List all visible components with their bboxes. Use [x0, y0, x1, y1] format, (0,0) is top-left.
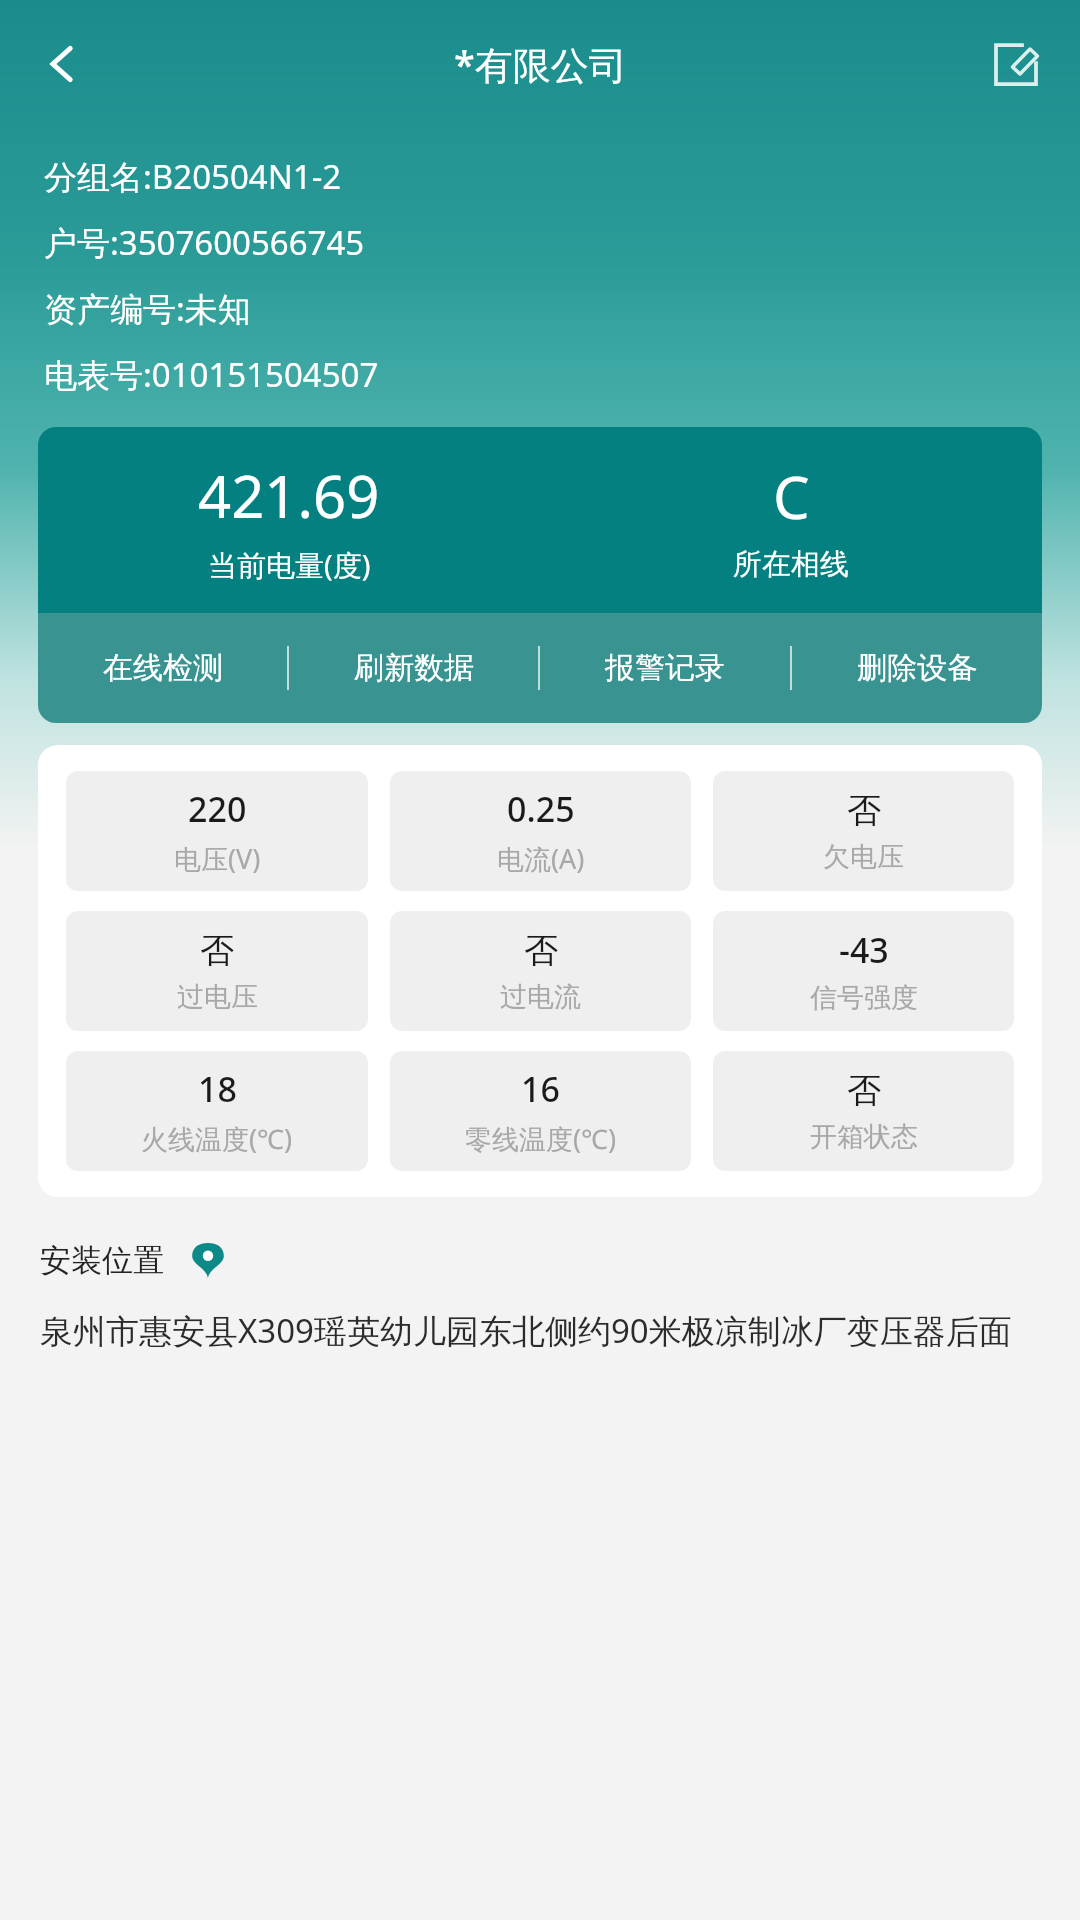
- staticText: 否: [847, 789, 881, 832]
- staticText: 泉州市惠安县X309瑶英幼儿园东北侧约90米极凉制冰厂变压器后面: [40, 1308, 1040, 1353]
- staticText: 电表号:010151504507: [44, 352, 379, 397]
- button[interactable]: 220: [66, 771, 368, 891]
- button[interactable]: 18: [66, 1051, 368, 1171]
- staticText: 过电压: [177, 980, 258, 1014]
- button[interactable]: 否: [713, 771, 1014, 891]
- staticText: 信号强度: [810, 981, 918, 1015]
- staticText: 所在相线: [733, 546, 849, 583]
- staticText: 电压(V): [174, 840, 261, 877]
- button[interactable]: 否: [713, 1051, 1014, 1171]
- staticText: 刷新数据: [354, 649, 474, 687]
- button[interactable]: 在线检测: [38, 613, 287, 723]
- staticText: 否: [847, 1069, 881, 1112]
- staticText: 220: [188, 786, 247, 832]
- button[interactable]: -43: [713, 911, 1014, 1031]
- button[interactable]: 安装位置: [40, 1241, 226, 1280]
- button[interactable]: 报警记录: [540, 613, 790, 723]
- staticText: 16: [521, 1066, 560, 1112]
- staticText: 电流(A): [497, 840, 585, 877]
- staticText: *有限公司: [454, 38, 627, 90]
- staticText: 当前电量(度): [208, 545, 371, 585]
- button[interactable]: 刷新数据: [289, 613, 538, 723]
- staticText: 否: [200, 929, 234, 972]
- staticText: 过电流: [500, 980, 581, 1014]
- staticText: 火线温度(℃): [141, 1120, 293, 1157]
- button[interactable]: 否: [66, 911, 368, 1031]
- staticText: 删除设备: [857, 649, 977, 687]
- staticText: C: [773, 457, 810, 536]
- staticText: 安装位置: [40, 1241, 164, 1280]
- staticText: 分组名:B20504N1-2: [44, 154, 342, 199]
- staticText: 421.69: [198, 456, 380, 535]
- staticText: 资产编号:未知: [44, 286, 251, 331]
- staticText: -43: [839, 927, 889, 973]
- staticText: 0.25: [507, 786, 575, 832]
- staticText: 零线温度(℃): [465, 1120, 617, 1157]
- button[interactable]: 0.25: [390, 771, 691, 891]
- button[interactable]: 删除设备: [792, 613, 1042, 723]
- staticText: 在线检测: [103, 649, 223, 687]
- staticText: 户号:3507600566745: [44, 220, 365, 265]
- button[interactable]: Back: [20, 22, 104, 106]
- staticText: 开箱状态: [810, 1120, 918, 1154]
- staticText: 报警记录: [605, 649, 725, 687]
- staticText: 欠电压: [823, 840, 904, 874]
- button[interactable]: Edit: [974, 22, 1058, 106]
- staticText: 18: [198, 1066, 237, 1112]
- button[interactable]: 16: [390, 1051, 691, 1171]
- staticText: 否: [524, 929, 558, 972]
- button[interactable]: 否: [390, 911, 691, 1031]
